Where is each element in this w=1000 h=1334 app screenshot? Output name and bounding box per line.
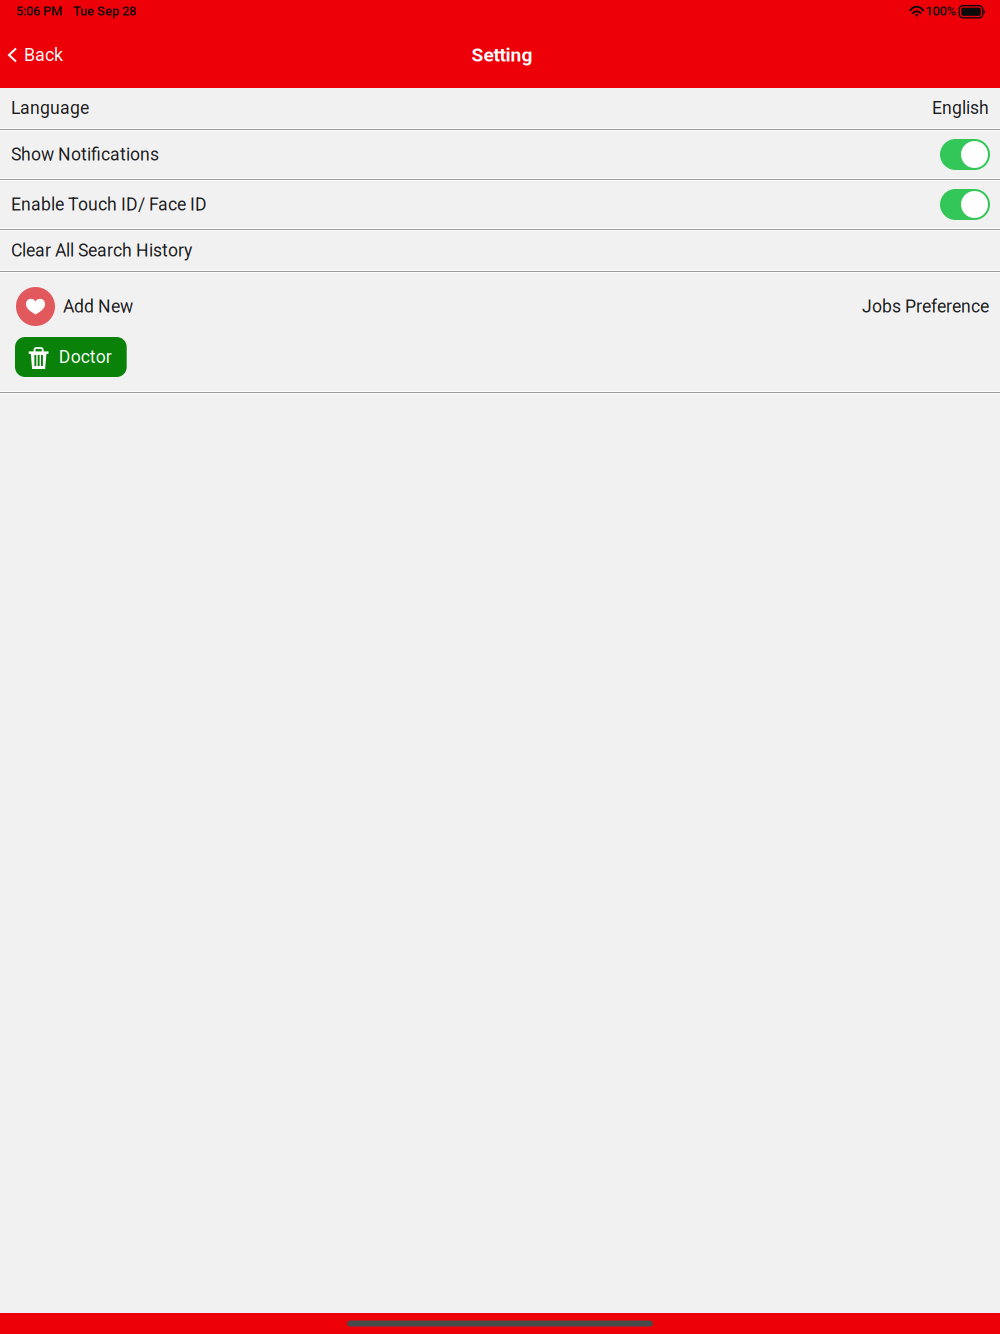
staticText: 5:06 PM <box>16 3 62 19</box>
staticText: Tue Sep 28 <box>73 3 136 19</box>
button[interactable]: Clear All Search History <box>0 231 1000 270</box>
staticText: Back <box>24 44 63 65</box>
staticText: 100% <box>925 3 956 19</box>
staticText: English <box>932 98 989 118</box>
staticText: Clear All Search History <box>11 240 192 261</box>
button[interactable]: Language <box>0 88 1000 128</box>
button[interactable]: Add New <box>16 287 133 326</box>
staticText: Add New <box>63 296 133 317</box>
staticText: Doctor <box>59 347 112 367</box>
staticText: Show Notifications <box>11 144 159 165</box>
staticText: Setting <box>471 44 532 66</box>
button[interactable]: Show Notifications <box>940 139 990 170</box>
staticText: Enable Touch ID/ Face ID <box>11 194 207 215</box>
button[interactable]: Doctor <box>15 337 127 377</box>
button[interactable]: Enable Touch ID / Face ID <box>940 189 990 220</box>
staticText: Jobs Preference <box>862 296 989 317</box>
staticText: Language <box>11 98 89 118</box>
button[interactable]: Back <box>0 33 75 77</box>
